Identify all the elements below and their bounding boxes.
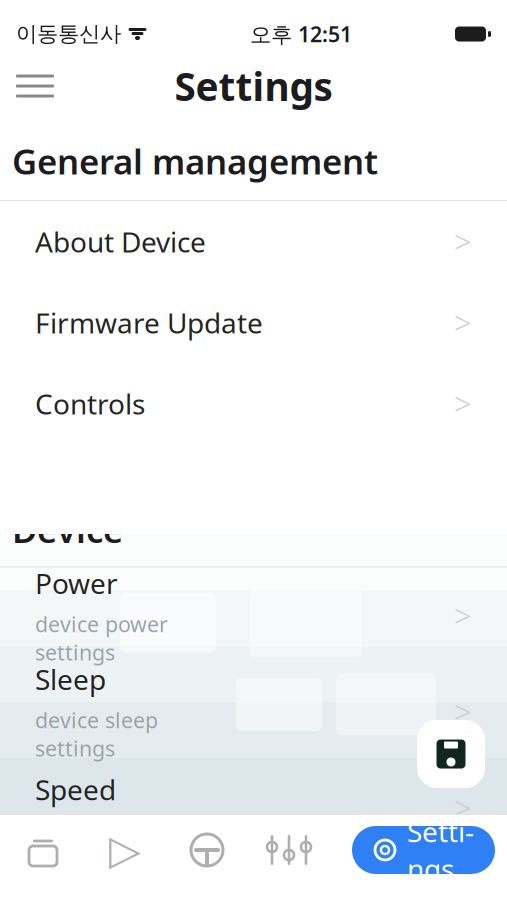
staticText: device power settings [35,610,168,666]
button[interactable]: Home [2,814,84,886]
staticText: > [454,383,472,424]
staticText: 이동통신사 [16,21,121,47]
staticText: Settings [174,60,332,112]
button[interactable]: Settings [352,826,495,874]
button[interactable]: Power [0,567,507,663]
staticText: > [454,691,472,732]
button[interactable]: About Device [0,201,507,282]
button[interactable]: Controls [248,814,330,886]
button[interactable]: Menu [6,62,64,110]
staticText: ▷ [109,826,141,873]
button[interactable]: Play [84,814,166,886]
staticText: About Device [35,223,206,260]
button[interactable]: Speed [0,759,507,855]
button[interactable]: Save [417,720,485,788]
staticText: > [454,787,472,828]
staticText: Settings [407,813,474,887]
staticText: Power [35,565,118,602]
button[interactable]: Controls [0,363,507,444]
staticText: Speed [35,771,116,808]
staticText: > [454,302,472,343]
button[interactable]: Sleep [0,663,507,759]
staticText: General management [12,138,378,184]
staticText: Km/h [35,816,89,844]
staticText: Controls [35,385,145,422]
staticText: > [454,221,472,262]
staticText: Sleep [35,661,106,698]
button[interactable]: Firmware Update [0,282,507,363]
button[interactable]: Drive [166,814,248,886]
staticText: 오후 12:51 [250,20,352,48]
staticText: Firmware Update [35,304,263,341]
staticText: Device [12,506,123,552]
staticText: device sleep settings [35,706,158,762]
staticText: > [454,595,472,636]
